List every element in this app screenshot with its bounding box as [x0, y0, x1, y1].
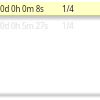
button[interactable]: 0d 0h 0m 8s	[0, 2, 100, 15]
staticText: 1/4	[62, 20, 74, 31]
button[interactable]: 0d 0h 5m 27s	[0, 19, 100, 32]
staticText: 1/4	[62, 3, 74, 14]
staticText: 0d 0h 0m 8s	[0, 3, 44, 14]
staticText: 0d 0h 5m 27s	[0, 20, 48, 31]
